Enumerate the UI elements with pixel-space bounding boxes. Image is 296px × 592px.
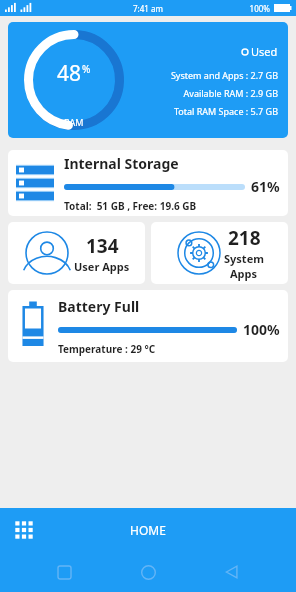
staticText: 100% xyxy=(249,3,270,14)
button[interactable]: HOME xyxy=(110,514,186,546)
button[interactable]: Battery xyxy=(8,290,288,362)
button[interactable]: Back xyxy=(212,552,252,592)
staticText: 61% xyxy=(251,177,280,196)
button[interactable]: Storage xyxy=(8,150,288,216)
button[interactable]: System apps xyxy=(151,222,288,284)
button[interactable]: User apps xyxy=(8,222,145,284)
staticText: Available RAM : 2.9 GB xyxy=(183,87,278,99)
staticText: Total RAM Space : 5.7 GB xyxy=(173,105,278,117)
staticText: Apps xyxy=(230,266,258,281)
staticText: Battery Full xyxy=(58,297,140,316)
staticText: 100% xyxy=(243,320,280,339)
other: Battery xyxy=(16,300,50,352)
staticText: RAM xyxy=(64,116,84,128)
staticText: 7:41 am xyxy=(133,3,163,14)
staticText: System xyxy=(224,251,264,266)
staticText: 134 xyxy=(86,233,119,259)
staticText: Total: 51 GB , Free: 19.6 GB xyxy=(64,199,197,213)
staticText: Temperature : 29 °C xyxy=(58,342,156,356)
button[interactable]: Apps grid xyxy=(8,514,40,546)
other: User apps xyxy=(24,230,70,276)
staticText: HOME xyxy=(130,522,166,538)
staticText: % xyxy=(82,62,91,76)
staticText: System and Apps : 2.7 GB xyxy=(170,69,278,81)
staticText: 218 xyxy=(228,225,261,251)
staticText: Internal Storage xyxy=(64,154,179,173)
staticText: User Apps xyxy=(74,259,130,274)
button[interactable]: Recents xyxy=(44,552,84,592)
staticText: 48 xyxy=(57,59,82,88)
staticText: Used xyxy=(251,44,278,59)
other: System apps xyxy=(176,230,222,276)
other: Storage xyxy=(16,163,56,203)
button[interactable]: 48 xyxy=(8,22,288,138)
button[interactable]: Home xyxy=(128,552,168,592)
